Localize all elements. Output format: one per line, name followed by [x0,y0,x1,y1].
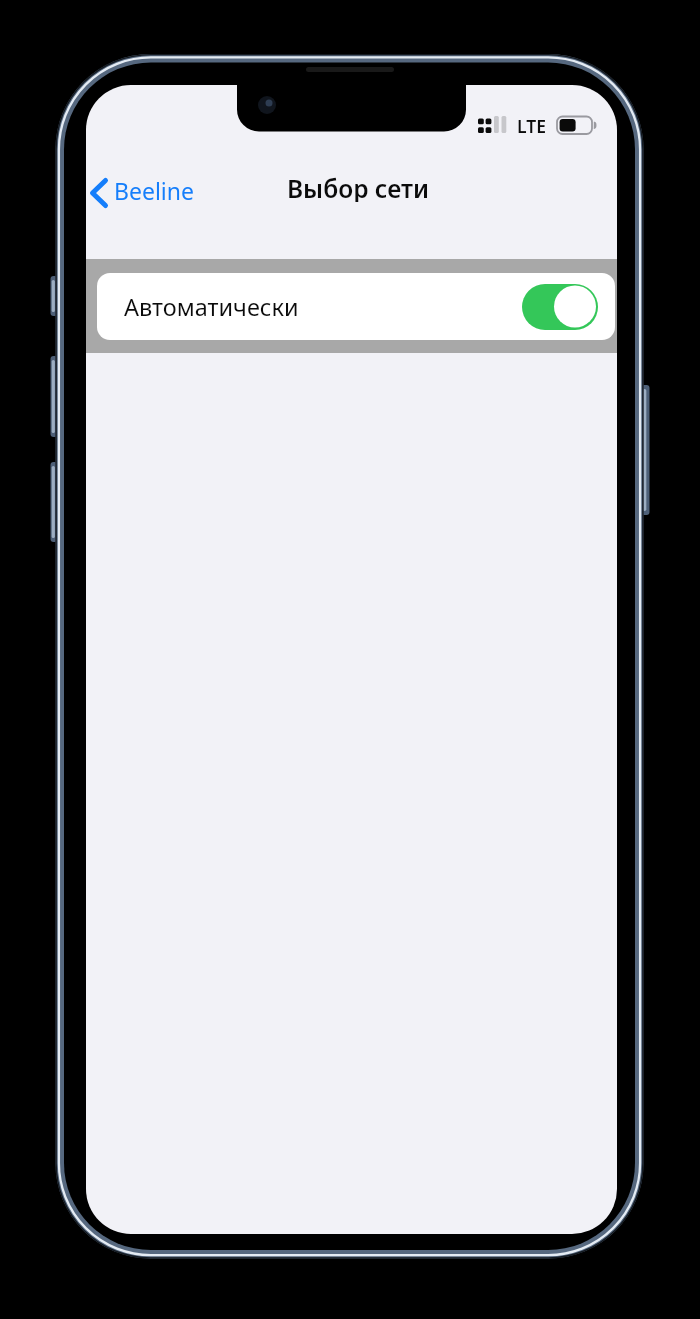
staticText: Автоматически [124,291,299,323]
staticText: LTE [517,114,546,138]
staticText: Выбор сети [287,172,429,202]
button[interactable]: Автоматически [97,273,615,340]
staticText: Beeline [114,175,194,206]
button[interactable] [522,284,598,330]
button[interactable]: Beeline [114,175,194,206]
